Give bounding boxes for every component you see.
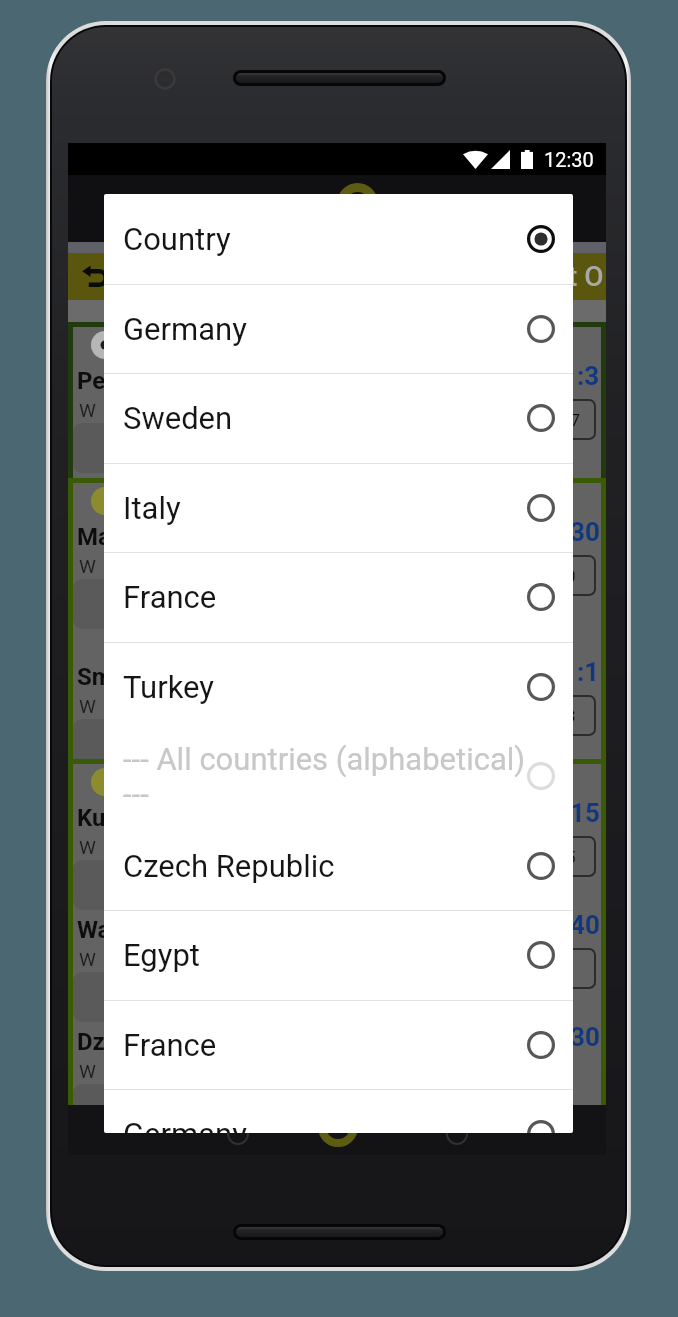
staticText: Dz	[77, 1028, 105, 1056]
staticText: 15	[570, 798, 600, 828]
staticText: W	[79, 695, 96, 717]
staticText: W	[79, 948, 96, 970]
button[interactable]: France	[104, 1000, 573, 1090]
staticText: 30	[570, 1022, 600, 1052]
staticText: Sm	[77, 663, 113, 691]
staticText: 30	[570, 517, 600, 547]
button[interactable]: Nav item	[227, 1123, 249, 1145]
staticText: :1	[577, 657, 600, 687]
staticText: 1	[566, 959, 576, 979]
button[interactable]: Add	[318, 1107, 358, 1147]
staticText: Germany	[123, 1116, 247, 1133]
staticText: 40	[570, 910, 600, 940]
staticText: 5	[566, 847, 576, 867]
staticText: W	[79, 836, 96, 858]
staticText: W	[79, 555, 96, 577]
staticText: 37	[561, 410, 581, 430]
staticText: 3	[566, 706, 576, 726]
button[interactable]: France	[104, 552, 573, 642]
button[interactable]: Czech Republic	[104, 821, 573, 911]
staticText: --- All countries (alphabetical) ---	[123, 741, 531, 812]
staticText: 12:30	[544, 148, 594, 171]
button[interactable]: Country	[104, 194, 573, 284]
staticText: Turkey	[123, 669, 214, 705]
staticText: France	[123, 579, 217, 615]
staticText: W	[79, 399, 96, 421]
button[interactable]: --- All countries (alphabetical) ---	[104, 731, 573, 821]
staticText: Ma	[77, 523, 111, 551]
button[interactable]: Sweden	[104, 373, 573, 463]
staticText: France	[123, 1027, 217, 1063]
staticText: Germany	[123, 311, 247, 347]
staticText: Sweden	[123, 400, 233, 436]
staticText: Egypt	[123, 937, 200, 973]
other: Back	[82, 264, 108, 290]
button[interactable]: Egypt	[104, 910, 573, 1000]
button[interactable]: Germany	[104, 1089, 573, 1133]
button[interactable]: Nav item	[446, 1123, 468, 1145]
staticText: :3	[577, 361, 600, 391]
button[interactable]: Germany	[104, 284, 573, 374]
staticText: Country	[123, 221, 231, 257]
staticText: Czech Republic	[123, 848, 335, 884]
button[interactable]: Italy	[104, 463, 573, 553]
staticText: Wa	[77, 916, 111, 944]
staticText: Pe	[77, 367, 106, 395]
staticText: Ku	[77, 804, 106, 832]
staticText: 0	[566, 566, 576, 586]
staticText: Italy	[123, 490, 181, 526]
staticText: Set O	[536, 260, 604, 293]
button[interactable]: Turkey	[104, 642, 573, 732]
staticText: W	[79, 1060, 96, 1082]
